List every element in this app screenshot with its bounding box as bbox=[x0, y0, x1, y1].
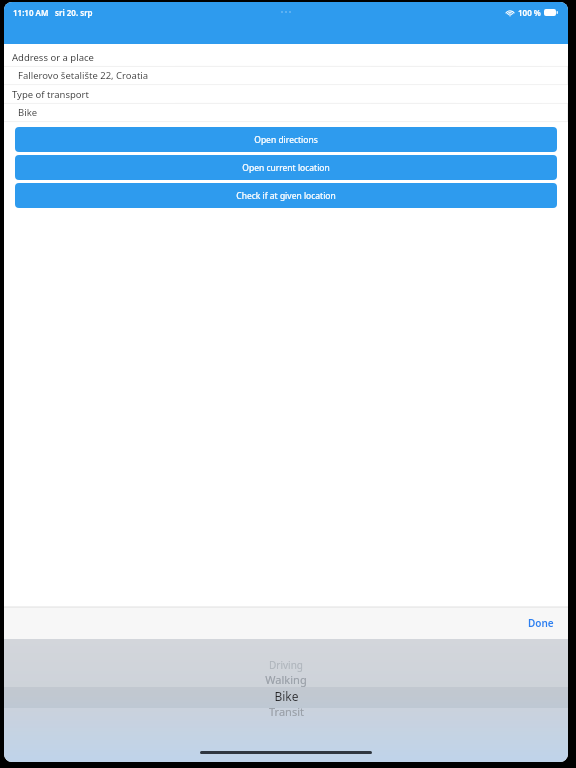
button[interactable]: Transit bbox=[4, 704, 568, 719]
staticText: 11:10 AM bbox=[13, 7, 49, 18]
staticText: Driving bbox=[269, 658, 303, 672]
button[interactable]: Bike bbox=[4, 103, 568, 122]
staticText: sri 20. srp bbox=[55, 7, 93, 18]
staticText: Type of transport bbox=[12, 88, 89, 101]
button[interactable]: Fallerovo šetalište 22, Croatia bbox=[4, 66, 568, 85]
button[interactable]: Bike bbox=[4, 687, 568, 704]
button[interactable]: Open directions bbox=[15, 127, 557, 152]
button[interactable]: Done bbox=[520, 611, 562, 635]
staticText: Open current location bbox=[242, 162, 330, 174]
staticText: Walking bbox=[265, 672, 307, 687]
staticText: Check if at given location bbox=[236, 190, 336, 202]
staticText: Bike bbox=[274, 688, 299, 704]
staticText: Done bbox=[528, 616, 554, 630]
staticText: Address or a place bbox=[12, 51, 94, 64]
staticText: Open directions bbox=[254, 134, 318, 146]
staticText: Bike bbox=[18, 106, 38, 119]
staticText: Fallerovo šetalište 22, Croatia bbox=[18, 69, 149, 82]
button[interactable]: Check if at given location bbox=[15, 183, 557, 208]
button[interactable]: Walking bbox=[4, 672, 568, 687]
staticText: 100 % bbox=[518, 7, 541, 18]
staticText: Transit bbox=[269, 704, 304, 719]
button[interactable]: Open current location bbox=[15, 155, 557, 180]
